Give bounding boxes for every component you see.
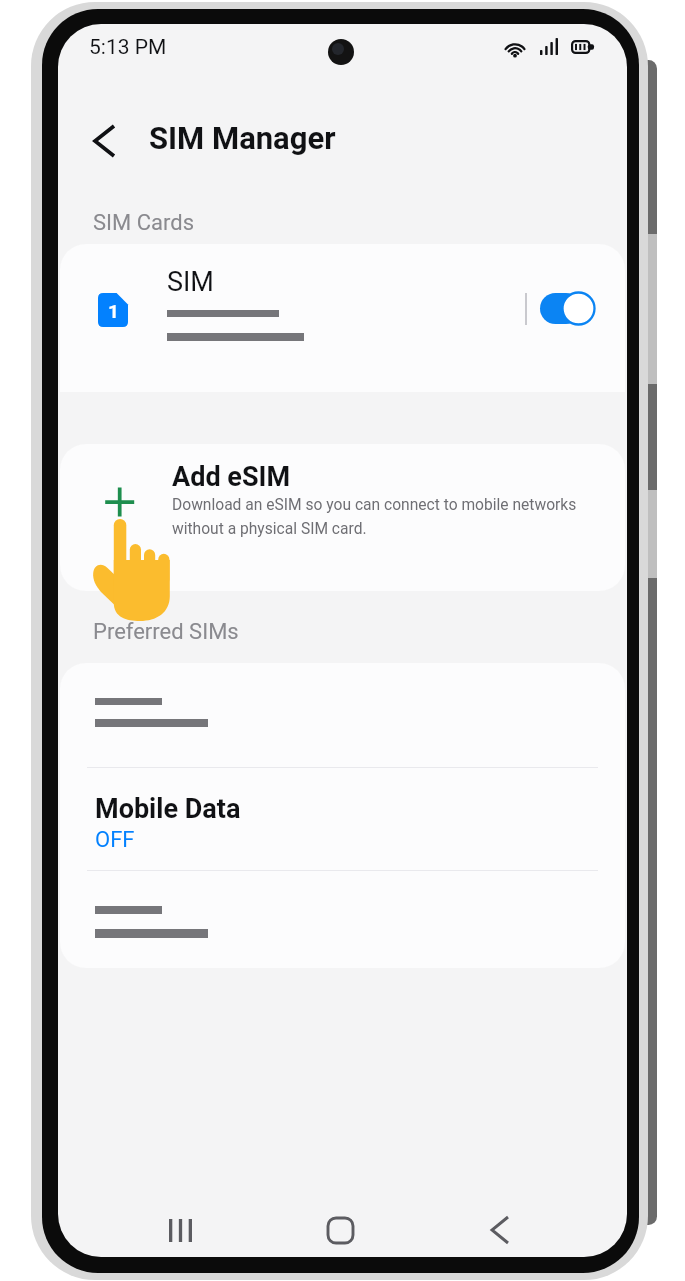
staticText: SIM Manager (149, 120, 336, 156)
button[interactable]: Add eSIM (60, 444, 625, 591)
staticText: SIM (167, 266, 214, 298)
staticText: Preferred SIMs (93, 619, 239, 645)
button[interactable]: Mobile Data (60, 768, 625, 870)
button[interactable]: SIM on/off toggle (540, 291, 596, 326)
button[interactable]: Back (80, 117, 128, 165)
staticText: OFF (95, 827, 135, 853)
staticText: 5:13 PM (89, 35, 167, 60)
staticText: Add eSIM (172, 461, 291, 493)
button[interactable]: Back (473, 1203, 527, 1257)
staticText: Download an eSIM so you can connect to m… (172, 496, 577, 538)
staticText: 1 (108, 300, 119, 322)
staticText: Mobile Data (95, 793, 241, 825)
staticText: SIM Cards (93, 210, 195, 236)
button[interactable]: Recent apps (153, 1203, 207, 1257)
button[interactable]: Home (313, 1203, 367, 1257)
button[interactable] (60, 871, 625, 967)
button[interactable]: 1 (60, 244, 625, 392)
button[interactable] (60, 663, 625, 767)
